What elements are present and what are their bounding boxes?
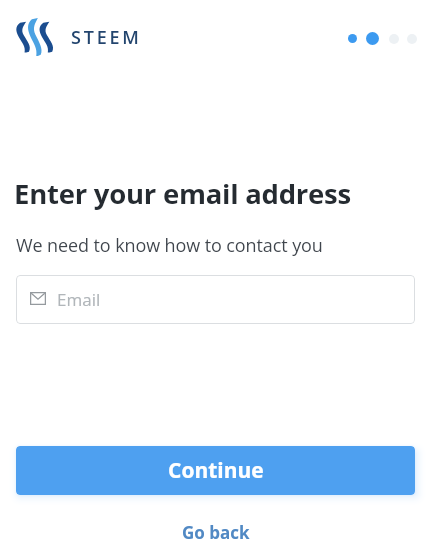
button[interactable]: Steem logo xyxy=(17,18,143,56)
button[interactable]: Go back xyxy=(170,516,262,549)
staticText: Email xyxy=(57,288,101,311)
button[interactable]: Continue xyxy=(16,446,415,495)
staticText: Enter your email address xyxy=(14,175,351,212)
staticText: Continue xyxy=(168,456,264,485)
staticText: We need to know how to contact you xyxy=(16,233,323,258)
staticText: STEEM xyxy=(71,25,142,50)
other: Steem logo xyxy=(17,18,53,56)
button[interactable]: Email xyxy=(16,275,415,324)
other: Signup progress: step 2 of 4 xyxy=(347,32,360,45)
